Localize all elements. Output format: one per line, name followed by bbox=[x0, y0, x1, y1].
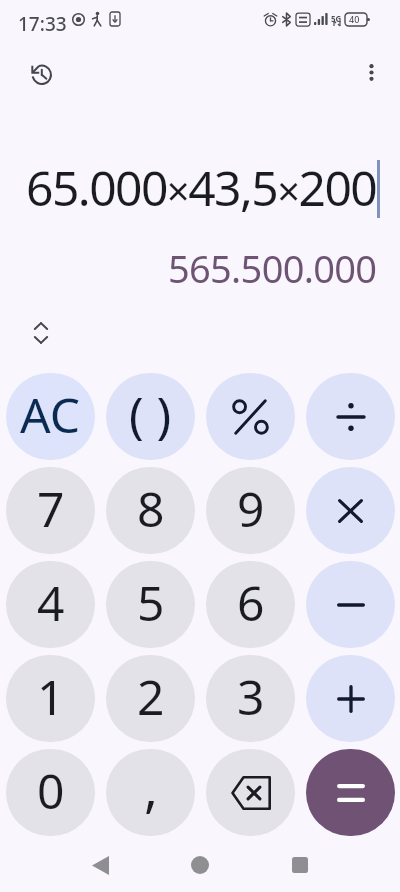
button[interactable]: 1 bbox=[6, 655, 95, 742]
staticText: 7 bbox=[37, 476, 65, 541]
button[interactable]: Percent bbox=[206, 373, 295, 460]
button[interactable]: Recent apps bbox=[264, 842, 336, 888]
button[interactable]: Equals bbox=[306, 749, 395, 836]
staticText: 6 bbox=[237, 570, 265, 635]
staticText: 5 bbox=[137, 570, 165, 635]
button[interactable]: 9 bbox=[206, 467, 295, 554]
staticText: 3 bbox=[237, 664, 265, 729]
button[interactable]: Subtract bbox=[306, 561, 395, 648]
button[interactable]: History bbox=[16, 49, 63, 96]
button[interactable]: Expand history bbox=[24, 316, 57, 349]
button[interactable]: Multiply bbox=[306, 467, 395, 554]
staticText: 2 bbox=[137, 664, 165, 729]
staticText: AC bbox=[20, 382, 81, 447]
button[interactable]: Divide bbox=[306, 373, 395, 460]
button[interactable]: More options bbox=[348, 49, 395, 96]
staticText: 65.000×43,5×200 bbox=[26, 155, 377, 220]
button[interactable]: 7 bbox=[6, 467, 95, 554]
button[interactable]: Home bbox=[164, 842, 236, 888]
button[interactable]: 6 bbox=[206, 561, 295, 648]
staticText: 8 bbox=[137, 476, 165, 541]
staticText: 17:33 bbox=[18, 11, 67, 37]
button[interactable]: Add bbox=[306, 655, 395, 742]
staticText: 5G bbox=[331, 13, 342, 24]
button[interactable]: Back bbox=[64, 842, 136, 888]
button[interactable]: 4 bbox=[6, 561, 95, 648]
button[interactable]: AC bbox=[6, 373, 95, 460]
button[interactable]: 3 bbox=[206, 655, 295, 742]
button[interactable]: 5 bbox=[106, 561, 195, 648]
button[interactable]: 2 bbox=[106, 655, 195, 742]
staticText: 9 bbox=[237, 476, 265, 541]
staticText: 0 bbox=[37, 758, 65, 823]
button[interactable]: 0 bbox=[6, 749, 95, 836]
staticText: 40 bbox=[349, 13, 360, 25]
button[interactable]: 8 bbox=[106, 467, 195, 554]
staticText: 1 bbox=[37, 664, 65, 729]
staticText: 4 bbox=[37, 570, 65, 635]
staticText: 565.500.000 bbox=[168, 242, 377, 294]
button[interactable]: Backspace bbox=[206, 749, 295, 836]
button[interactable]: , bbox=[106, 749, 195, 836]
staticText: ( ) bbox=[129, 381, 172, 448]
button[interactable]: ( ) bbox=[106, 373, 195, 460]
staticText: , bbox=[144, 751, 158, 822]
